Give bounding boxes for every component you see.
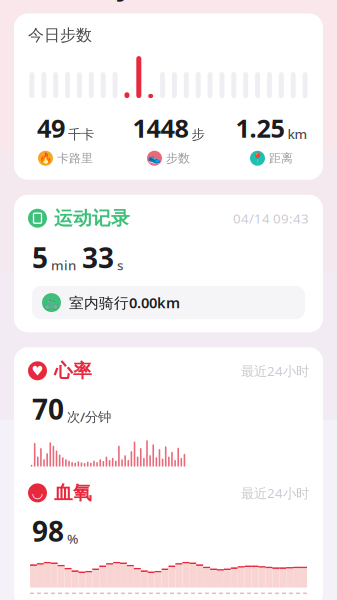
staticText: 📍 (251, 152, 264, 164)
staticText: 血氧 (54, 481, 92, 504)
staticText: min (51, 256, 76, 274)
staticText: 49 (37, 111, 65, 145)
staticText: 最近24小时 (241, 362, 309, 380)
staticText: 👟 (148, 152, 161, 164)
staticText: 步数 (166, 151, 190, 166)
staticText: 步 (191, 126, 204, 143)
staticText: 70 (32, 390, 64, 427)
staticText: ♥ (31, 363, 43, 378)
staticText: 千卡 (68, 126, 94, 143)
staticText: 5 (32, 239, 48, 276)
staticText: 98 (32, 512, 64, 550)
staticText: 室内骑行0.00km (69, 293, 180, 312)
staticText: 最近24小时 (241, 484, 309, 502)
staticText: % (67, 530, 78, 547)
staticText: 运动记录 (54, 207, 130, 230)
staticText: 今日步数 (28, 25, 92, 45)
staticText: 🚲 (44, 296, 59, 309)
staticText: 1.25 (235, 111, 284, 145)
staticText: 🔥 (39, 152, 52, 164)
staticText: 33 (82, 239, 114, 276)
staticText: 04/14 09:43 (233, 209, 309, 227)
staticText: 心率 (54, 359, 92, 382)
staticText: WATCH JZ2 (18, 0, 158, 3)
staticText: km (287, 125, 307, 143)
staticText: ◡ (31, 485, 43, 500)
staticText: 距离 (269, 151, 293, 166)
staticText: 卡路里 (57, 151, 93, 166)
staticText: 1448 (132, 111, 188, 145)
staticText: 次/分钟 (67, 408, 111, 425)
button[interactable]: 运动记录 (14, 195, 323, 332)
staticText: s (117, 256, 123, 274)
